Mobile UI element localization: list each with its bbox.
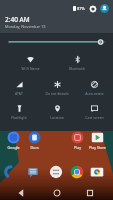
button[interactable]: Chrome <box>70 165 84 179</box>
button[interactable]: Back <box>14 186 28 200</box>
staticText: Play Store <box>89 145 106 150</box>
button[interactable]: Settings <box>89 5 97 13</box>
staticText: Play <box>74 145 81 150</box>
button[interactable]: Location <box>40 103 74 120</box>
button[interactable]: User account <box>100 4 109 13</box>
button[interactable]: Home <box>50 186 64 200</box>
button[interactable]: Flashlight <box>2 103 36 120</box>
button[interactable]: Brightness <box>0 33 113 47</box>
button[interactable]: AT&T <box>2 79 36 96</box>
button[interactable]: Apps <box>49 165 63 179</box>
button[interactable]: Do not disturb <box>40 79 74 96</box>
staticText: 2:40 AM <box>5 15 30 24</box>
button[interactable]: Auto-rotate <box>77 79 111 96</box>
button[interactable]: Google <box>3 131 23 150</box>
staticText: Do not disturb <box>45 91 69 96</box>
staticText: Wi-Fi Name <box>21 66 40 71</box>
button[interactable]: Messaging <box>26 165 40 179</box>
staticText: Monday, November 13 <box>5 24 46 29</box>
button[interactable]: Recents <box>83 186 97 200</box>
button[interactable]: Camera <box>90 165 104 179</box>
button[interactable]: Wi-Fi Name <box>10 54 50 71</box>
staticText: Flashlight <box>11 115 27 120</box>
staticText: Auto-rotate <box>85 91 104 96</box>
button[interactable]: Phone <box>4 165 18 179</box>
staticText: AT&T <box>15 91 23 96</box>
staticText: 87% <box>77 6 85 11</box>
staticText: Cast screen <box>85 115 104 120</box>
button[interactable]: Cast screen <box>77 103 111 120</box>
button[interactable]: Docs <box>24 131 44 150</box>
button[interactable]: Play <box>67 131 87 150</box>
staticText: Bluetooth <box>69 66 85 71</box>
button[interactable]: Bluetooth <box>57 54 97 71</box>
staticText: Location <box>50 115 64 120</box>
staticText: Docs <box>30 145 39 150</box>
staticText: Google <box>7 145 20 150</box>
button[interactable]: Play Store <box>87 131 107 150</box>
